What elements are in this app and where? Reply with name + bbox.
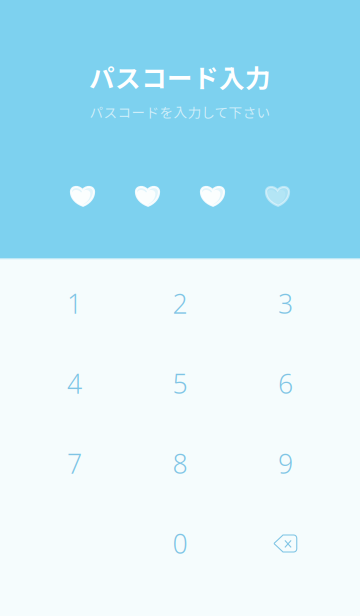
staticText: パスコード入力 xyxy=(89,58,271,95)
staticText: 7 xyxy=(67,446,82,481)
staticText: 6 xyxy=(278,366,293,401)
button[interactable]: 0 xyxy=(127,503,233,583)
staticText: 9 xyxy=(278,446,293,481)
button[interactable]: 5 xyxy=(127,343,233,423)
button[interactable]: 1 xyxy=(22,263,127,343)
staticText: 1 xyxy=(67,286,82,321)
staticText: 2 xyxy=(172,286,187,321)
button[interactable]: 8 xyxy=(127,423,233,503)
staticText: 0 xyxy=(172,526,187,561)
button[interactable]: 7 xyxy=(22,423,127,503)
staticText: 4 xyxy=(67,366,82,401)
button[interactable]: 6 xyxy=(233,343,338,423)
button[interactable]: 3 xyxy=(233,263,338,343)
staticText: 3 xyxy=(278,286,293,321)
button[interactable]: 9 xyxy=(233,423,338,503)
staticText: 5 xyxy=(172,366,187,401)
button[interactable]: 4 xyxy=(22,343,127,423)
button[interactable]: 2 xyxy=(127,263,233,343)
staticText: パスコードを入力して下さい xyxy=(89,102,270,122)
button[interactable]: Delete xyxy=(233,503,338,583)
staticText: 8 xyxy=(172,446,187,481)
